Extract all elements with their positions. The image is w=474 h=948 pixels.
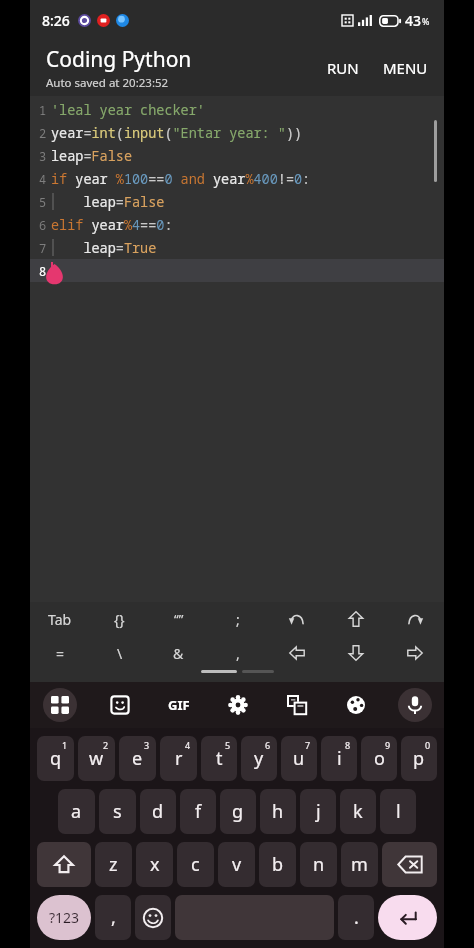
staticText: y — [254, 746, 264, 771]
staticText: GIF — [168, 696, 190, 714]
button[interactable]: {} — [90, 602, 149, 636]
staticText: c — [191, 852, 200, 877]
staticText: ; — [236, 610, 240, 629]
button[interactable]: ?123 — [37, 895, 91, 940]
button[interactable]: s — [99, 789, 136, 834]
staticText: 'leal year checker' — [51, 101, 205, 119]
staticText: k — [353, 799, 363, 824]
button[interactable]: Tab — [30, 602, 90, 636]
button[interactable]: v — [218, 842, 255, 887]
button[interactable]: j — [300, 789, 336, 834]
staticText: 2 — [103, 739, 109, 751]
staticText: , — [236, 644, 240, 663]
staticText: 4 — [185, 739, 191, 751]
button[interactable]: Emoji — [135, 895, 171, 940]
staticText: . — [354, 905, 359, 930]
button[interactable]: Cursor down — [326, 636, 385, 670]
button[interactable]: Voice input — [385, 682, 444, 728]
button[interactable]: o — [361, 736, 397, 781]
button[interactable]: g — [220, 789, 256, 834]
button[interactable]: Cursor left — [267, 636, 326, 670]
staticText: r — [175, 746, 183, 771]
staticText: {} — [114, 610, 125, 629]
button[interactable]: a — [58, 789, 95, 834]
button[interactable]: x — [136, 842, 173, 887]
staticText: e — [132, 746, 143, 771]
staticText: , — [111, 905, 116, 930]
staticText: RUN — [327, 58, 359, 78]
button[interactable]: Stickers — [90, 682, 149, 728]
button[interactable]: MENU — [375, 50, 436, 86]
button[interactable]: 1 — [30, 96, 444, 602]
staticText: 8 — [39, 263, 47, 279]
staticText: % — [422, 15, 430, 27]
staticText: Tab — [48, 610, 72, 629]
button[interactable]: e — [119, 736, 156, 781]
button[interactable]: . — [338, 895, 374, 940]
button[interactable]: Undo — [267, 602, 326, 636]
button[interactable]: h — [260, 789, 296, 834]
button[interactable]: m — [341, 842, 378, 887]
staticText: year=int(input("Entar year: ")) — [51, 124, 303, 142]
staticText: 6 — [265, 739, 271, 751]
staticText: 3 — [144, 739, 150, 751]
staticText: v — [232, 852, 242, 877]
staticText: i — [337, 746, 342, 771]
button[interactable]: ; — [208, 602, 267, 636]
staticText: g — [232, 799, 244, 824]
button[interactable]: n — [300, 842, 337, 887]
staticText: o — [374, 746, 385, 771]
button[interactable]: Apps — [30, 682, 90, 728]
staticText: 9 — [385, 739, 391, 751]
button[interactable]: q — [37, 736, 74, 781]
button[interactable]: “” — [149, 602, 208, 636]
button[interactable]: Settings — [208, 682, 267, 728]
button[interactable]: z — [95, 842, 132, 887]
button[interactable]: RUN — [319, 50, 367, 86]
button[interactable]: Cursor up — [326, 602, 385, 636]
staticText: n — [313, 852, 325, 877]
button[interactable]: Redo — [385, 602, 444, 636]
staticText: u — [293, 746, 305, 771]
button[interactable]: & — [149, 636, 208, 670]
button[interactable]: u — [281, 736, 317, 781]
button[interactable]: d — [140, 789, 176, 834]
staticText: 5 — [39, 194, 47, 210]
button[interactable]: Cursor right — [385, 636, 444, 670]
staticText: x — [150, 852, 160, 877]
staticText: if year %100==0 and year%400!=0: — [51, 170, 311, 188]
staticText: w — [89, 746, 104, 771]
button[interactable]: Enter — [378, 895, 437, 940]
button[interactable]: Translate — [267, 682, 326, 728]
button[interactable]: t — [201, 736, 237, 781]
button[interactable]: = — [30, 636, 90, 670]
staticText: leap=False — [51, 193, 165, 211]
button[interactable]: b — [259, 842, 296, 887]
button[interactable]: Shift — [37, 842, 91, 887]
other: Cursor handle — [44, 264, 65, 285]
button[interactable]: Theme — [326, 682, 385, 728]
staticText: h — [272, 799, 284, 824]
button[interactable]: Backspace — [382, 842, 437, 887]
staticText: “” — [174, 610, 184, 628]
button[interactable]: p — [401, 736, 437, 781]
button[interactable]: y — [241, 736, 277, 781]
button[interactable]: w — [78, 736, 115, 781]
staticText: Auto saved at 20:23:52 — [46, 75, 169, 91]
button[interactable]: f — [180, 789, 216, 834]
staticText: Coding Python — [46, 45, 192, 74]
staticText: t — [216, 746, 223, 771]
button[interactable]: k — [340, 789, 376, 834]
button[interactable]: , — [208, 636, 267, 670]
staticText: elif year%4==0: — [51, 216, 173, 234]
button[interactable]: i — [321, 736, 357, 781]
button[interactable]: l — [380, 789, 416, 834]
staticText: \ — [117, 644, 123, 663]
button[interactable]: GIF — [149, 682, 208, 728]
button[interactable]: \ — [90, 636, 149, 670]
button[interactable]: c — [177, 842, 214, 887]
button[interactable]: r — [160, 736, 197, 781]
button[interactable]: , — [95, 895, 131, 940]
staticText: 1 — [39, 102, 47, 118]
